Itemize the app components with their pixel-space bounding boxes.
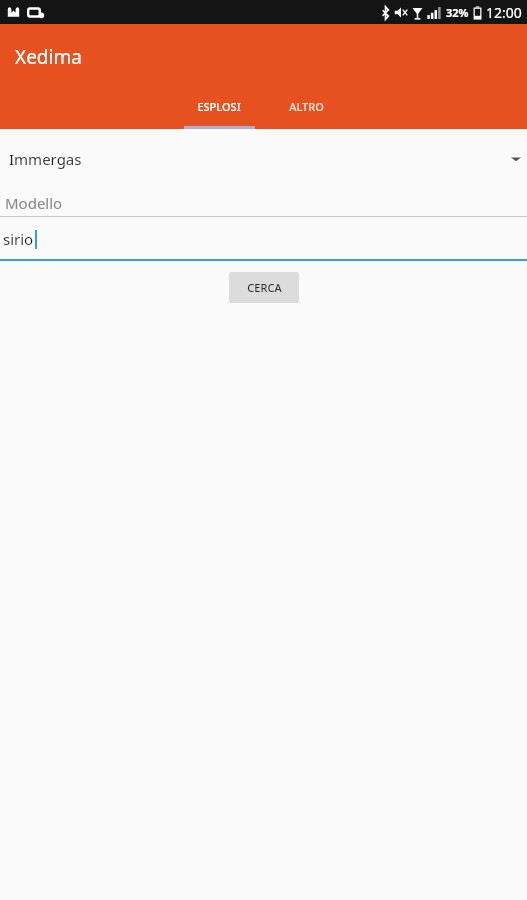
staticText: Immergas <box>9 149 82 169</box>
staticText: 32% <box>446 5 469 20</box>
staticText: Xedima <box>15 44 82 70</box>
staticText: ESPLOSI <box>197 99 241 114</box>
staticText: 12:00 <box>486 3 522 22</box>
button[interactable]: ALTRO <box>266 90 346 129</box>
button[interactable]: sirio <box>0 217 527 261</box>
button[interactable]: CERCA <box>229 272 299 303</box>
staticText: sirio <box>3 229 34 249</box>
staticText: CERCA <box>247 280 282 295</box>
button[interactable]: ESPLOSI <box>172 90 266 129</box>
staticText: Modello <box>5 193 63 213</box>
button[interactable]: Select brand <box>0 129 527 189</box>
staticText: ALTRO <box>289 99 324 114</box>
